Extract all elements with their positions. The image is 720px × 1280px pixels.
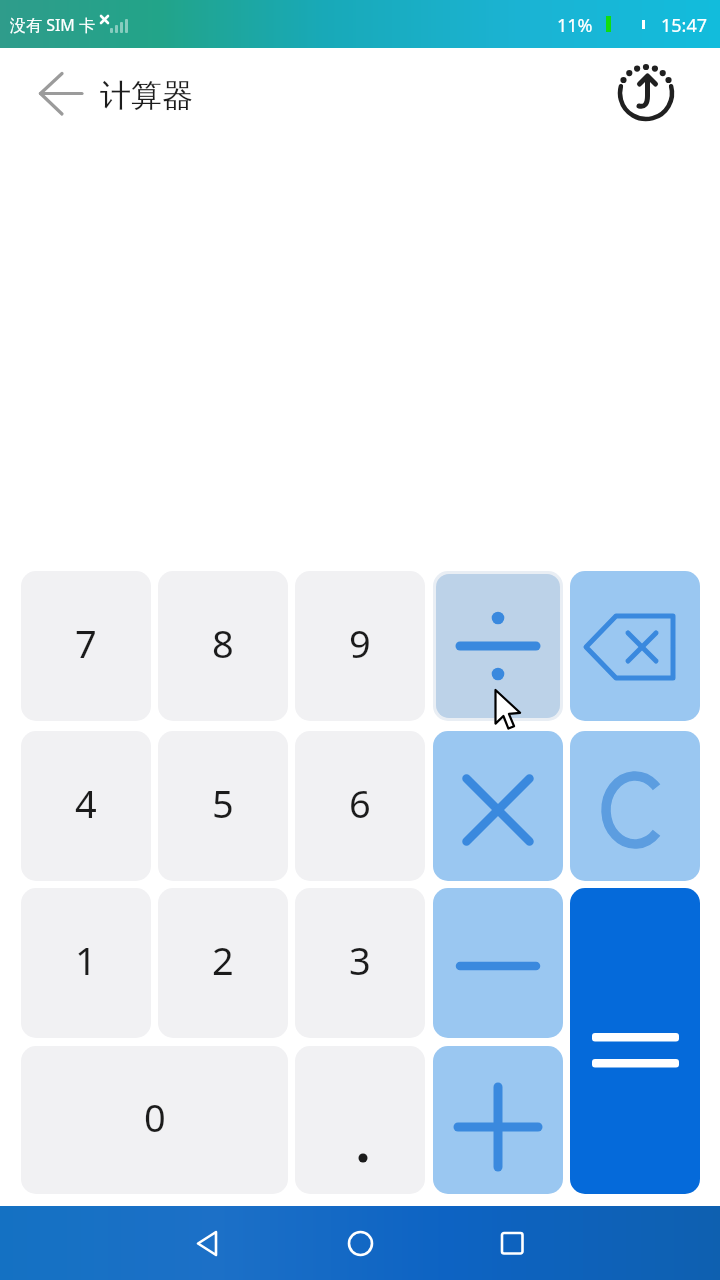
button[interactable]: 1	[21, 888, 151, 1038]
staticText: 1	[75, 934, 97, 986]
staticText: 8	[212, 617, 234, 669]
staticText: 2	[212, 934, 234, 986]
button[interactable]	[160, 1206, 255, 1280]
staticText: 没有 SIM 卡	[10, 14, 96, 36]
staticText: 9	[349, 617, 371, 669]
staticText: 6	[349, 777, 371, 829]
staticText: 5	[212, 777, 234, 829]
button[interactable]	[433, 888, 563, 1038]
button[interactable]: 5	[158, 731, 288, 881]
button[interactable]	[465, 1206, 560, 1280]
button[interactable]: 8	[158, 571, 288, 721]
button[interactable]	[433, 1046, 563, 1194]
staticText: 4	[75, 777, 97, 829]
button[interactable]	[570, 888, 700, 1194]
button[interactable]	[616, 63, 676, 123]
staticText: 3	[349, 934, 371, 986]
button[interactable]: 9	[295, 571, 425, 721]
button[interactable]	[28, 63, 88, 123]
button[interactable]	[433, 731, 563, 881]
button[interactable]: 4	[21, 731, 151, 881]
button[interactable]: 7	[21, 571, 151, 721]
button[interactable]: 0	[21, 1046, 288, 1194]
button[interactable]: 2	[158, 888, 288, 1038]
button[interactable]	[295, 1046, 425, 1194]
staticText: 7	[75, 617, 97, 669]
staticText: 15:47	[661, 13, 708, 38]
staticText: 0	[144, 1091, 166, 1143]
button[interactable]	[433, 571, 563, 721]
button[interactable]	[570, 731, 700, 881]
button[interactable]	[313, 1206, 408, 1280]
staticText: 计算器	[100, 76, 193, 115]
button[interactable]: 6	[295, 731, 425, 881]
button[interactable]: 3	[295, 888, 425, 1038]
button[interactable]	[570, 571, 700, 721]
staticText: 11%	[557, 13, 593, 38]
